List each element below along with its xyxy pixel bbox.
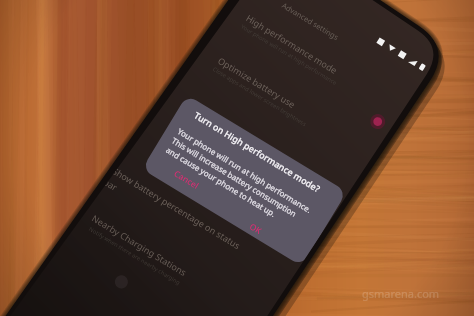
button[interactable]: High performance mode dialog (0, 0, 474, 316)
